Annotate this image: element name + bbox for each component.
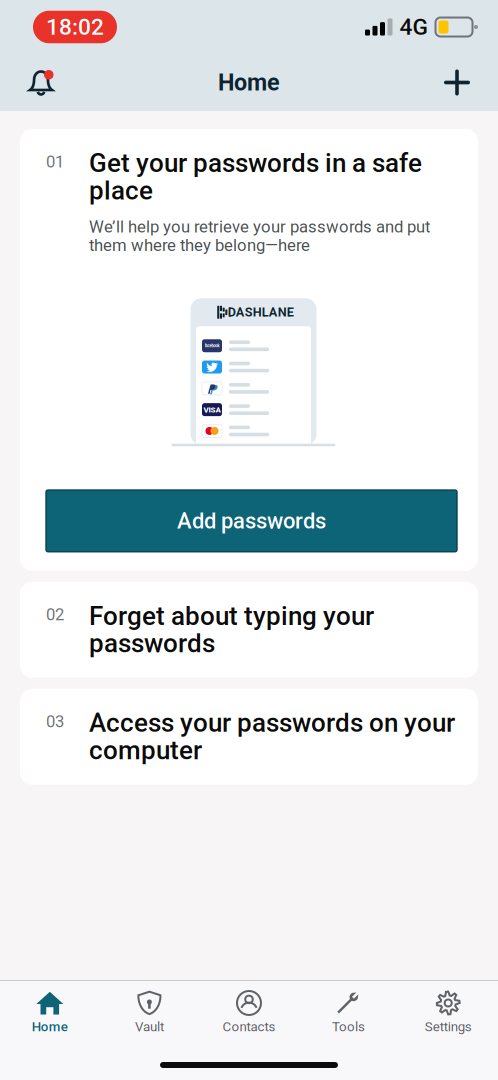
staticText: Access your passwords on your computer [89, 708, 455, 766]
staticText: Forget about typing your passwords [89, 601, 374, 659]
button[interactable]: Add [428, 54, 486, 111]
button[interactable]: Tools [299, 981, 398, 1043]
button[interactable]: Add passwords [46, 490, 457, 552]
staticText: Contacts [222, 1019, 275, 1035]
staticText: DASHLANE [228, 305, 294, 320]
staticText: 02 [46, 605, 64, 624]
staticText: Home [218, 69, 280, 96]
staticText: Home [32, 1019, 68, 1035]
button[interactable]: Notifications [12, 54, 70, 111]
staticText: VISA [203, 405, 220, 414]
button[interactable]: Home [0, 981, 100, 1043]
staticText: 03 [46, 712, 64, 731]
button[interactable]: Settings [398, 981, 498, 1043]
staticText: facebook [204, 343, 219, 348]
button[interactable]: Vault [100, 981, 199, 1043]
button[interactable]: Contacts [199, 981, 299, 1043]
staticText: We’ll help you retrieve your passwords a… [89, 217, 430, 255]
staticText: Add passwords [177, 508, 326, 534]
staticText: Tools [332, 1019, 365, 1035]
staticText: Vault [135, 1019, 164, 1035]
staticText: 01 [46, 152, 64, 171]
staticText: 4G [399, 14, 427, 40]
staticText: 18:02 [46, 14, 104, 40]
staticText: Settings [425, 1019, 472, 1035]
staticText: Get your passwords in a safe place [89, 148, 422, 206]
